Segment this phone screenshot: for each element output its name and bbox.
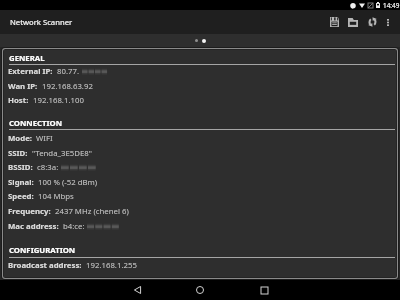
- button[interactable]: Signal:: [4, 177, 396, 188]
- button[interactable]: GENERAL: [4, 53, 396, 64]
- staticText: Network Scanner: [10, 17, 73, 27]
- staticText: 192.168.63.92: [42, 81, 93, 92]
- staticText: 100 % (-52 dBm): [38, 177, 98, 188]
- staticText: Speed:: [8, 191, 34, 202]
- button[interactable]: Frequency:: [4, 206, 396, 217]
- staticText: "Tenda_3E5DE8": [32, 148, 92, 159]
- staticText: 192.168.1.255: [86, 260, 137, 271]
- button[interactable]: External IP:: [4, 66, 396, 77]
- staticText: Wan IP:: [8, 81, 38, 92]
- button[interactable]: CONFIGURATION: [4, 245, 396, 256]
- staticText: Mac address:: [8, 221, 59, 232]
- button[interactable]: Host:: [4, 95, 396, 106]
- button[interactable]: Refresh: [362, 10, 382, 34]
- staticText: Broadcast address:: [8, 260, 82, 271]
- staticText: c8:3a:: [37, 162, 59, 173]
- staticText: WIFI: [36, 133, 53, 144]
- button[interactable]: Recents: [244, 280, 284, 300]
- button[interactable]: CONNECTION: [4, 118, 396, 129]
- staticText: Frequency:: [8, 206, 51, 217]
- staticText: BSSID:: [8, 162, 33, 173]
- button[interactable]: SSID:: [4, 148, 396, 159]
- staticText: SSID:: [8, 148, 28, 159]
- button[interactable]: Broadcast address:: [4, 260, 396, 271]
- button[interactable]: Speed:: [4, 191, 396, 202]
- staticText: 192.168.1.100: [33, 95, 84, 106]
- button[interactable]: Wan IP:: [4, 81, 396, 92]
- staticText: 80.77.: [57, 66, 80, 77]
- button[interactable]: BSSID:: [4, 162, 396, 173]
- button[interactable]: Back: [117, 280, 157, 300]
- staticText: Signal:: [8, 177, 34, 188]
- staticText: Host:: [8, 95, 29, 106]
- button[interactable]: Mode:: [4, 133, 396, 144]
- staticText: 14:49: [383, 1, 400, 10]
- staticText: GENERAL: [9, 53, 45, 64]
- staticText: b4:ce:: [63, 221, 85, 232]
- button[interactable]: More options: [378, 10, 398, 34]
- staticText: CONNECTION: [9, 118, 63, 129]
- button[interactable]: Save: [324, 10, 344, 34]
- button[interactable]: Home: [180, 280, 220, 300]
- staticText: Mode:: [8, 133, 32, 144]
- button[interactable]: Mac address:: [4, 221, 396, 232]
- staticText: External IP:: [8, 66, 53, 77]
- button[interactable]: Open folder: [343, 10, 363, 34]
- staticText: 2437 MHz (chenel 6): [55, 206, 129, 217]
- staticText: 104 Mbps: [38, 191, 74, 202]
- staticText: CONFIGURATION: [9, 245, 76, 256]
